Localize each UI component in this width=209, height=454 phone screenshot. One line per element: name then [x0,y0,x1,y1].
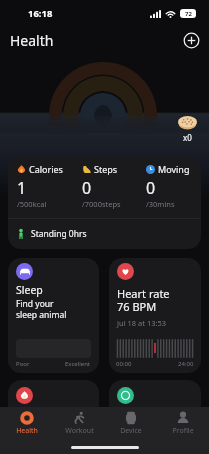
staticText: Heart rate 76 BPM [117,286,170,314]
button[interactable] [8,380,99,420]
staticText: 16:18 [28,7,53,20]
staticText: /7000steps [82,199,121,209]
staticText: Workout [65,426,94,436]
button[interactable]: Workout [53,407,105,440]
staticText: 00:00 [116,360,132,368]
button[interactable]: Heart rate 76 BPM [109,258,201,373]
staticText: Jul 18 at 13:53 [117,318,167,328]
staticText: /30mins [146,199,175,209]
button[interactable]: Sleep [8,258,99,373]
staticText: Profile [172,426,194,436]
staticText: x0 [183,132,192,143]
staticText: /500kcal [17,199,47,209]
staticText: Sleep [16,283,43,297]
staticText: 0 [146,177,156,199]
staticText: Health [16,426,38,436]
staticText: 1 [17,177,27,199]
staticText: Steps [94,163,118,175]
staticText: Find your sleep animal [16,298,67,320]
button[interactable]: Device [105,407,157,440]
button[interactable]: Calories [8,157,201,249]
button[interactable]: Health [0,407,53,440]
staticText: Poor [16,360,30,368]
button[interactable] [109,380,201,420]
button[interactable]: Profile [157,407,209,440]
staticText: Health [10,31,54,50]
staticText: 0 [82,177,92,199]
staticText: Device [120,426,142,436]
staticText: Calories [29,163,63,175]
staticText: 24:00 [178,360,194,368]
staticText: Excellent [65,360,91,368]
staticText: Standing 0hrs [31,228,87,240]
staticText: 72 [185,10,192,18]
button[interactable]: Add [183,32,200,49]
staticText: Moving [158,163,190,175]
